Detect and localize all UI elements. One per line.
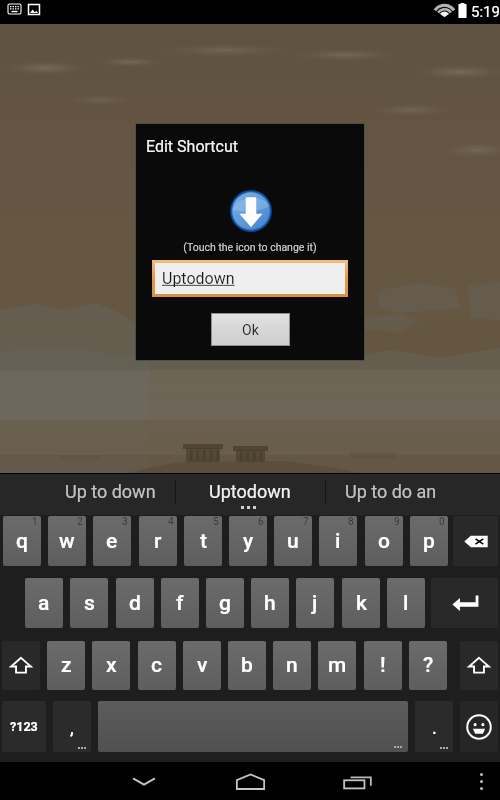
staticText: 4 [168, 516, 174, 528]
staticText: 2 [77, 516, 83, 528]
button[interactable]: Recent apps [323, 762, 391, 800]
button[interactable]: Uptodown [180, 474, 320, 508]
button[interactable]: Change icon [230, 190, 272, 232]
button[interactable]: Ok [212, 314, 289, 345]
button[interactable]: q [3, 516, 41, 566]
button[interactable]: h [251, 578, 289, 628]
staticText: Up to down [65, 481, 156, 502]
button[interactable]: More options [463, 762, 500, 800]
staticText: 3 [122, 516, 128, 528]
staticText: j [312, 591, 318, 616]
button[interactable]: u [274, 516, 312, 566]
staticText: w [59, 529, 75, 554]
button[interactable]: ?123 [2, 701, 46, 752]
staticText: , [70, 718, 74, 738]
button[interactable]: ? [409, 641, 447, 690]
staticText: i [335, 529, 341, 554]
staticText: a [38, 591, 50, 616]
staticText: Edit Shortcut [146, 137, 238, 156]
staticText: 0 [439, 516, 445, 528]
button[interactable]: w [48, 516, 86, 566]
button[interactable]: l [387, 578, 425, 628]
button[interactable]: Backspace [453, 516, 498, 566]
staticText: l [403, 591, 409, 616]
staticText: o [378, 529, 390, 554]
staticText: h [264, 591, 276, 616]
button[interactable]: Enter [431, 578, 498, 628]
staticText: z [61, 653, 72, 678]
button[interactable]: Home [216, 762, 284, 800]
staticText: k [356, 591, 367, 616]
button[interactable]: y [229, 516, 267, 566]
button[interactable]: Space [98, 701, 408, 752]
staticText: Up to do an [345, 481, 437, 502]
staticText: m [328, 653, 347, 678]
button[interactable]: ! [364, 641, 402, 690]
staticText: 9 [394, 516, 400, 528]
staticText: 7 [303, 516, 309, 528]
staticText: c [151, 653, 163, 678]
button[interactable]: s [70, 578, 108, 628]
button[interactable]: b [228, 641, 266, 690]
button[interactable]: g [206, 578, 244, 628]
staticText: Uptodown [209, 481, 291, 502]
staticText: 1 [32, 516, 38, 528]
button[interactable]: z [47, 641, 85, 690]
button[interactable]: v [183, 641, 221, 690]
staticText: 5 [213, 516, 219, 528]
button[interactable]: Period [415, 701, 453, 752]
staticText: Ok [242, 322, 259, 338]
staticText: (Touch the icon to change it) [136, 241, 364, 253]
staticText: x [106, 653, 117, 678]
staticText: q [16, 529, 28, 554]
staticText: p [423, 529, 435, 554]
button[interactable]: Uptodown [155, 263, 345, 294]
button[interactable]: x [92, 641, 130, 690]
button[interactable]: Hide keyboard [110, 762, 178, 800]
button[interactable]: f [161, 578, 199, 628]
staticText: v [197, 653, 208, 678]
button[interactable]: c [138, 641, 176, 690]
staticText: y [243, 529, 254, 554]
staticText: e [106, 529, 118, 554]
button[interactable]: a [25, 578, 63, 628]
button[interactable]: t [184, 516, 222, 566]
staticText: g [219, 591, 231, 616]
staticText: 5:19 [471, 3, 500, 21]
staticText: r [154, 529, 162, 554]
staticText: 6 [258, 516, 264, 528]
staticText: f [176, 591, 184, 616]
staticText: t [200, 529, 207, 554]
staticText: ? [423, 653, 434, 678]
button[interactable]: r [139, 516, 177, 566]
button[interactable]: n [273, 641, 311, 690]
button[interactable]: d [116, 578, 154, 628]
staticText: . [432, 718, 437, 738]
staticText: 8 [348, 516, 354, 528]
button[interactable]: i [319, 516, 357, 566]
staticText: u [287, 529, 299, 554]
button[interactable]: Emoji [460, 701, 498, 752]
button[interactable]: Up to do an [316, 474, 466, 508]
button[interactable]: Shift [2, 641, 40, 690]
staticText: ! [380, 653, 386, 678]
staticText: n [286, 653, 298, 678]
button[interactable]: p [410, 516, 448, 566]
staticText: ?123 [10, 719, 38, 734]
staticText: d [129, 591, 141, 616]
button[interactable]: Up to down [35, 474, 185, 508]
staticText: s [84, 591, 95, 616]
button[interactable]: k [342, 578, 380, 628]
staticText: Uptodown [162, 269, 235, 288]
button[interactable]: Shift [460, 641, 498, 690]
button[interactable]: o [365, 516, 403, 566]
button[interactable]: Comma [53, 701, 91, 752]
button[interactable]: m [318, 641, 356, 690]
button[interactable]: j [296, 578, 334, 628]
button[interactable]: e [93, 516, 131, 566]
staticText: b [241, 653, 253, 678]
